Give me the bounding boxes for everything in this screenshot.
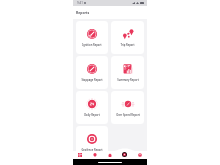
button[interactable]: Places bbox=[87, 151, 102, 159]
button[interactable]: Profile bbox=[132, 151, 147, 159]
staticText: Stoppage Report bbox=[81, 78, 103, 82]
staticText: Reports bbox=[76, 10, 90, 15]
button[interactable]: Over Speed Report bbox=[111, 91, 144, 124]
button[interactable]: Reports bbox=[117, 151, 132, 159]
staticText: Summary Report bbox=[117, 78, 139, 82]
button[interactable]: Dashboard bbox=[73, 151, 87, 159]
staticText: 9:41 bbox=[77, 1, 83, 5]
button[interactable]: Summary Report bbox=[111, 56, 144, 89]
staticText: Trip Report bbox=[120, 43, 135, 47]
staticText: Daily Report bbox=[84, 113, 100, 117]
staticText: Over Speed Report bbox=[116, 113, 140, 117]
button[interactable]: Geofence Report bbox=[76, 126, 108, 159]
staticText: Ignition Report bbox=[82, 43, 102, 47]
button[interactable]: Daily Report bbox=[76, 91, 108, 124]
button[interactable]: Trip Report bbox=[111, 21, 144, 54]
button[interactable]: Stoppage Report bbox=[76, 56, 108, 89]
button[interactable]: Ignition Report bbox=[76, 21, 108, 54]
button[interactable]: Home bbox=[102, 151, 117, 159]
staticText: Geofence Report bbox=[81, 148, 103, 152]
